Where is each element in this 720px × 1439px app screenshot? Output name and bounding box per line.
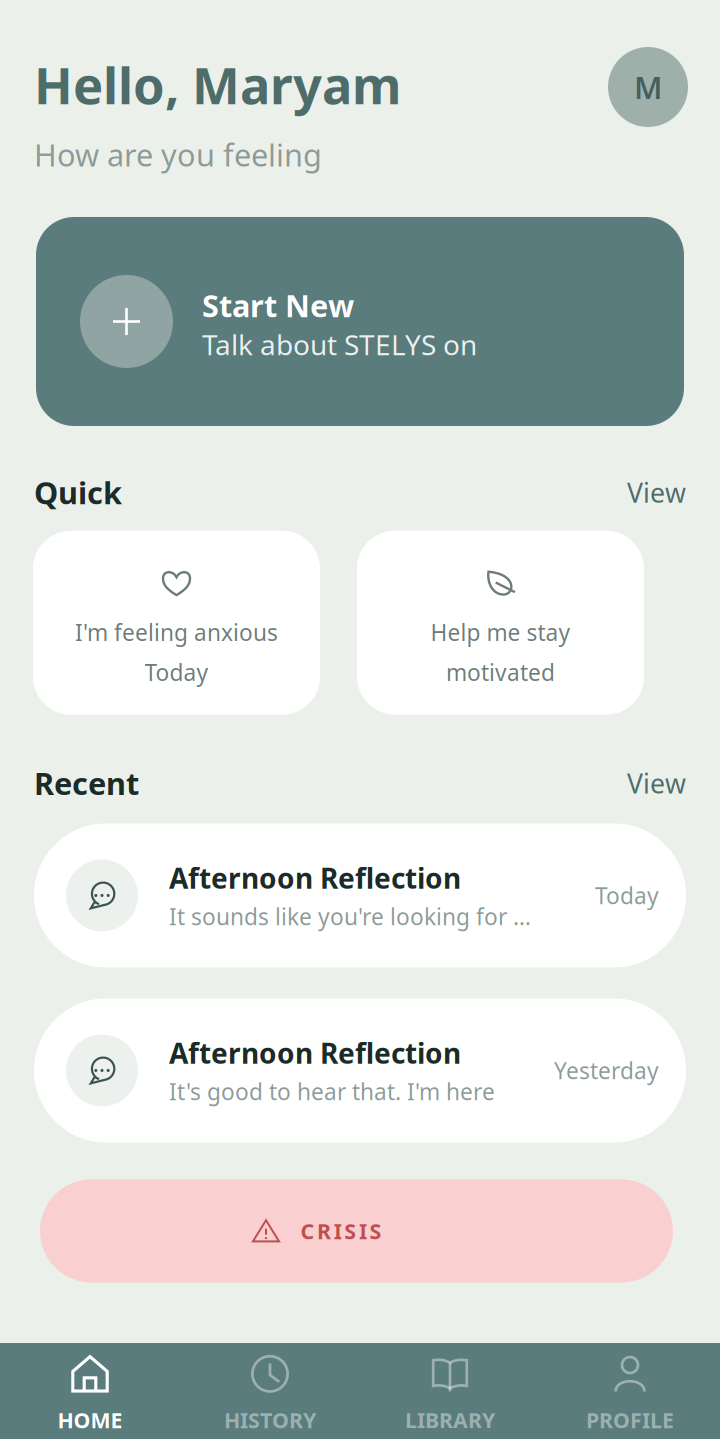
staticText: Hello, Maryam (34, 51, 401, 118)
button[interactable]: HOME (0, 1354, 180, 1434)
staticText: M (634, 67, 662, 107)
staticText: Today (144, 657, 208, 687)
staticText: LIBRARY (405, 1406, 495, 1434)
button[interactable]: CRISIS (40, 1179, 673, 1282)
button[interactable]: PROFILE (540, 1354, 720, 1434)
staticText: It sounds like you're looking for som... (169, 901, 541, 932)
staticText: Quick (34, 472, 122, 513)
staticText: Afternoon Reflection (169, 1034, 461, 1071)
staticText: Afternoon Reflection (169, 859, 461, 896)
button[interactable]: View (627, 765, 686, 801)
button[interactable]: Afternoon Reflection (34, 998, 686, 1142)
staticText: CRISIS (300, 1217, 381, 1245)
button[interactable]: Help me stay (357, 531, 644, 715)
button[interactable]: Profile (608, 47, 688, 127)
staticText: It's good to hear that. I'm here (169, 1076, 495, 1107)
staticText: Yesterday (554, 1055, 659, 1085)
staticText: HISTORY (224, 1406, 316, 1434)
button[interactable]: HISTORY (180, 1354, 360, 1434)
staticText: HOME (57, 1406, 122, 1434)
staticText: Today (595, 880, 659, 910)
staticText: motivated (446, 657, 555, 687)
staticText: Talk about STELYS on (202, 326, 477, 363)
staticText: Start New (202, 285, 354, 326)
button[interactable]: LIBRARY (360, 1354, 540, 1434)
button[interactable]: Afternoon Reflection (34, 823, 686, 967)
staticText: Recent (34, 763, 139, 803)
staticText: View (627, 475, 686, 510)
button[interactable]: Start New (36, 217, 684, 426)
staticText: View (627, 765, 686, 801)
staticText: I'm feeling anxious (75, 617, 278, 647)
staticText: PROFILE (586, 1406, 674, 1434)
button[interactable]: I'm feeling anxious (33, 531, 320, 715)
button[interactable]: View (627, 475, 686, 510)
staticText: Help me stay (430, 617, 570, 647)
staticText: How are you feeling (34, 134, 322, 175)
